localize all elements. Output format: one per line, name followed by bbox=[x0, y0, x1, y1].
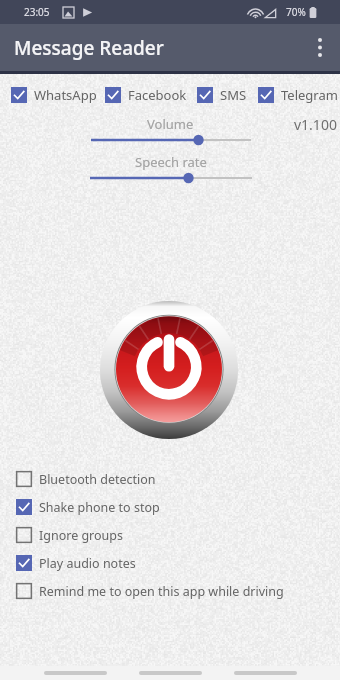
button[interactable]: SMS bbox=[197, 86, 247, 104]
staticText: Speech rate bbox=[135, 153, 207, 171]
staticText: Volume bbox=[147, 115, 194, 133]
button[interactable]: Home bbox=[139, 666, 202, 680]
button[interactable]: More options bbox=[300, 24, 340, 71]
button[interactable]: Facebook bbox=[105, 86, 187, 104]
staticText: Shake phone to stop bbox=[39, 499, 160, 516]
staticText: Ignore groups bbox=[39, 527, 123, 544]
button[interactable]: Speech rate slider bbox=[86, 169, 256, 187]
button[interactable]: Bluetooth detection bbox=[0, 465, 340, 493]
staticText: Telegram bbox=[281, 86, 338, 104]
staticText: Remind me to open this app while driving bbox=[39, 583, 284, 600]
staticText: Message Reader bbox=[14, 35, 164, 61]
button[interactable]: Telegram bbox=[258, 86, 338, 104]
staticText: Facebook bbox=[128, 86, 187, 104]
button[interactable]: WhatsApp bbox=[11, 86, 97, 104]
button[interactable]: Shake phone to stop bbox=[0, 493, 340, 521]
button[interactable]: Back bbox=[234, 666, 297, 680]
staticText: 23:05 bbox=[24, 5, 50, 19]
button[interactable]: Play audio notes bbox=[0, 549, 340, 577]
staticText: Play audio notes bbox=[39, 555, 136, 572]
staticText: v1.100 bbox=[294, 115, 337, 134]
button[interactable]: Recents bbox=[44, 666, 107, 680]
staticText: SMS bbox=[220, 86, 247, 104]
button[interactable]: Volume slider bbox=[87, 131, 255, 149]
staticText: Bluetooth detection bbox=[39, 471, 156, 488]
button[interactable]: Power bbox=[100, 301, 238, 439]
staticText: 70% bbox=[286, 5, 306, 19]
staticText: WhatsApp bbox=[34, 86, 97, 104]
button[interactable]: Ignore groups bbox=[0, 521, 340, 549]
button[interactable]: Remind me to open this app while driving bbox=[0, 577, 340, 605]
